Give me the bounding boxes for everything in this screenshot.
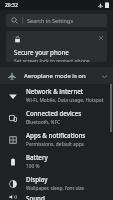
staticText: Wallpaper, sleep, font size bbox=[26, 185, 84, 192]
staticText: Permissions, default apps bbox=[26, 141, 84, 148]
button[interactable]: Dismiss bbox=[97, 34, 104, 41]
button[interactable]: Connected devices bbox=[0, 106, 113, 128]
button[interactable]: Search in Settings bbox=[6, 14, 107, 27]
staticText: Secure your phone bbox=[14, 48, 69, 56]
button[interactable]: Battery bbox=[0, 150, 113, 172]
staticText: Network & internet bbox=[26, 87, 84, 95]
staticText: Aeroplane mode is on bbox=[24, 72, 86, 80]
staticText: Search in Settings bbox=[27, 17, 74, 24]
staticText: 100 % bbox=[26, 163, 40, 170]
button[interactable]: Expand bbox=[100, 72, 108, 80]
staticText: Display bbox=[26, 175, 48, 183]
staticText: Battery bbox=[26, 153, 48, 161]
staticText: 20:32 bbox=[5, 2, 18, 9]
button[interactable]: Apps & notifications bbox=[0, 128, 113, 150]
button[interactable]: Display bbox=[0, 172, 113, 194]
staticText: Set screen lock to protect phone bbox=[14, 58, 90, 62]
staticText: Sound bbox=[26, 194, 45, 200]
button[interactable]: Network & internet bbox=[0, 84, 113, 106]
button[interactable]: Sound bbox=[0, 194, 113, 200]
staticText: Apps & notifications bbox=[26, 131, 86, 139]
staticText: Wi-Fi, Mobile, Data usage, Hotspot bbox=[26, 97, 104, 104]
button[interactable]: Aeroplane mode is on bbox=[0, 67, 113, 84]
button[interactable]: Secure your phone bbox=[6, 31, 107, 62]
staticText: Bluetooth, NFC bbox=[26, 119, 60, 126]
staticText: Connected devices bbox=[26, 109, 82, 117]
